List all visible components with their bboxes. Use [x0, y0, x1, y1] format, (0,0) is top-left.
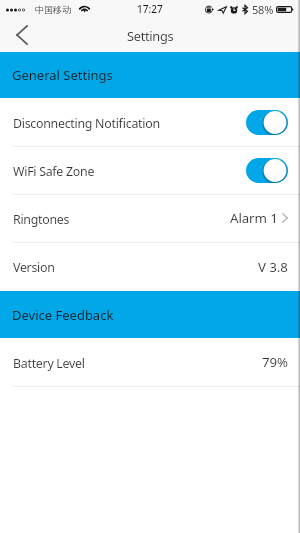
- staticText: Version: [13, 259, 55, 276]
- staticText: 中国移动: [35, 4, 71, 15]
- button[interactable]: Ringtones: [0, 194, 300, 242]
- staticText: WiFi Safe Zone: [13, 163, 95, 180]
- staticText: 17:27: [137, 2, 163, 16]
- button[interactable]: Toggle: [246, 110, 288, 135]
- button[interactable]: WiFi Safe Zone: [0, 146, 300, 194]
- staticText: Device Feedback: [12, 306, 114, 324]
- button[interactable]: Battery Level: [0, 338, 300, 386]
- button[interactable]: Back: [0, 18, 42, 52]
- staticText: Disconnecting Notification: [13, 115, 160, 132]
- button[interactable]: Version: [0, 242, 300, 291]
- staticText: General Settings: [12, 66, 113, 84]
- button[interactable]: Disconnecting Notification: [0, 98, 300, 146]
- button[interactable]: Toggle: [246, 158, 288, 183]
- staticText: Alarm 1: [230, 209, 278, 227]
- staticText: 79%: [262, 353, 288, 371]
- staticText: V 3.8: [258, 258, 288, 276]
- staticText: Settings: [127, 27, 174, 44]
- staticText: 58%: [252, 2, 274, 17]
- staticText: Ringtones: [13, 211, 70, 228]
- staticText: Battery Level: [13, 355, 85, 372]
